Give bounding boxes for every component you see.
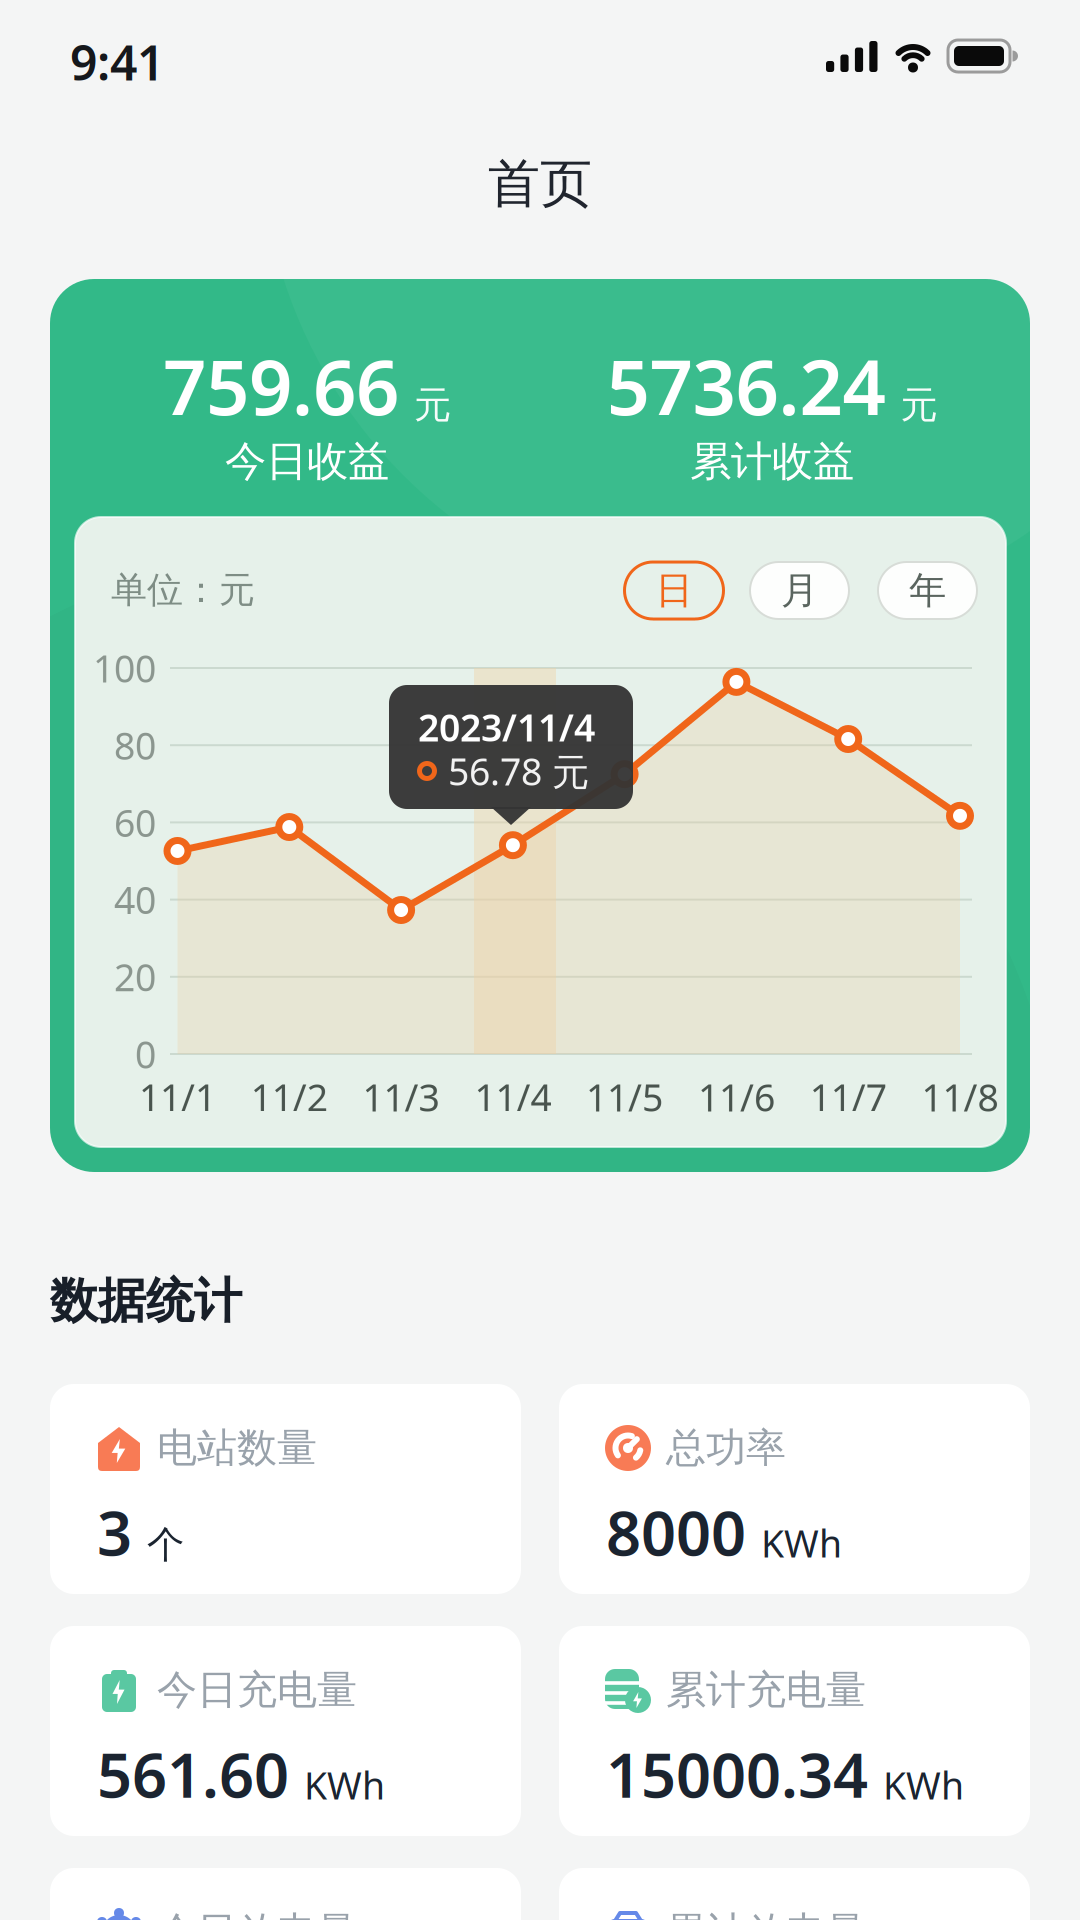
staticText: 100	[93, 643, 156, 693]
staticText: 9:41	[70, 30, 164, 94]
staticText: 11/7	[810, 1072, 887, 1122]
button[interactable]: 日	[624, 562, 723, 619]
staticText: 电站数量	[157, 1423, 317, 1472]
staticText: KWh	[304, 1760, 385, 1810]
staticText: 累计充电量	[666, 1665, 866, 1714]
staticText: 累计放电量	[666, 1907, 866, 1920]
staticText: 11/1	[139, 1072, 216, 1122]
button[interactable]: 月	[750, 562, 849, 619]
staticText: 数据统计	[50, 1271, 242, 1330]
staticText: 0	[135, 1029, 156, 1079]
staticText: 60	[114, 798, 156, 847]
staticText: 11/2	[251, 1072, 328, 1122]
staticText: 15000.34	[606, 1733, 868, 1815]
staticText: 3	[97, 1491, 132, 1573]
staticText: 今日收益	[225, 436, 389, 487]
staticText: 元	[414, 382, 451, 428]
staticText: 56.78 元	[448, 746, 589, 796]
staticText: 首页	[488, 152, 592, 216]
staticText: 20	[114, 952, 156, 1002]
staticText: 个	[147, 1522, 184, 1568]
staticText: 11/8	[921, 1072, 998, 1122]
staticText: 今日放电量	[157, 1907, 357, 1920]
staticText: 11/4	[474, 1072, 551, 1122]
staticText: 11/3	[363, 1072, 440, 1122]
staticText: 11/6	[698, 1072, 775, 1122]
staticText: 11/5	[586, 1072, 663, 1122]
staticText: 月	[781, 568, 818, 613]
staticText: KWh	[761, 1518, 842, 1568]
staticText: 今日充电量	[157, 1665, 357, 1714]
staticText: 561.60	[97, 1733, 289, 1815]
staticText: 759.66	[163, 335, 399, 436]
staticText: 累计收益	[690, 436, 854, 487]
staticText: 40	[114, 875, 156, 924]
staticText: 总功率	[666, 1423, 786, 1472]
staticText: 2023/11/4	[418, 702, 595, 752]
staticText: 8000	[606, 1491, 746, 1573]
staticText: 年	[909, 568, 946, 613]
staticText: 80	[114, 720, 156, 770]
staticText: 5736.24	[606, 335, 885, 436]
staticText: 单位：元	[111, 568, 255, 612]
staticText: 元	[900, 382, 937, 428]
staticText: KWh	[883, 1760, 964, 1810]
button[interactable]: 年	[878, 562, 977, 619]
staticText: 日	[655, 568, 692, 613]
